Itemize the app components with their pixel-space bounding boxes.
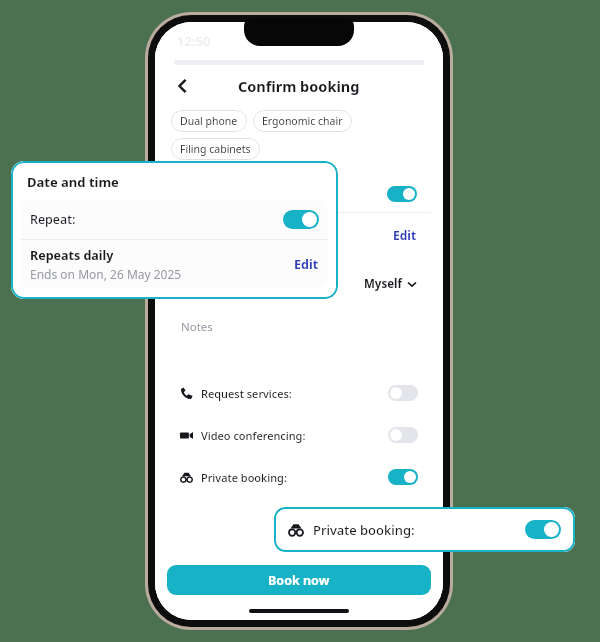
button[interactable]: Notes	[167, 309, 431, 367]
button[interactable]: Request services:	[167, 376, 431, 410]
staticText: Repeats daily	[30, 247, 114, 264]
staticText: Dual phone	[180, 114, 238, 128]
staticText: Myself	[364, 276, 402, 292]
staticText: Ergonomic chair	[262, 114, 343, 128]
staticText: Private booking:	[313, 521, 415, 539]
button[interactable]: Back	[165, 68, 201, 104]
staticText: Video conferencing:	[201, 428, 306, 443]
staticText: Confirm booking	[238, 76, 360, 96]
button[interactable]: Book for:	[167, 267, 431, 301]
button[interactable]: Video conferencing:	[167, 418, 431, 452]
staticText: Edit	[393, 227, 417, 243]
staticText: Repeat:	[30, 211, 76, 228]
staticText: 12:50	[177, 32, 211, 50]
staticText: Date and time	[27, 173, 119, 191]
button[interactable]: Private booking:	[167, 460, 431, 494]
staticText: Private booking:	[201, 470, 287, 485]
button[interactable]	[167, 176, 431, 212]
button[interactable]: Private booking:	[274, 507, 575, 552]
staticText: Request services:	[201, 386, 292, 401]
button[interactable]: Filing cabinets	[171, 138, 260, 160]
button[interactable]: Book now	[167, 565, 431, 595]
button[interactable]: Dual phone	[171, 110, 247, 132]
staticText: Notes	[181, 319, 213, 335]
button[interactable]: Edit	[167, 213, 431, 257]
button[interactable]: Repeat:	[21, 199, 328, 239]
button[interactable]: Repeats daily	[21, 240, 328, 288]
staticText: Book now	[268, 572, 330, 589]
staticText: Filing cabinets	[180, 142, 251, 156]
staticText: Ends on Mon, 26 May 2025	[30, 266, 182, 282]
staticText: Edit	[294, 256, 319, 273]
button[interactable]: Ergonomic chair	[253, 110, 352, 132]
